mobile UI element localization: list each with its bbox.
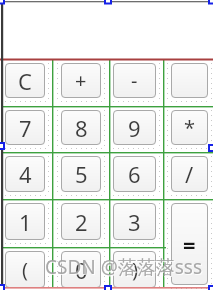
button[interactable] (171, 63, 208, 98)
staticText: + (75, 67, 87, 94)
staticText: ( (22, 256, 28, 283)
button[interactable]: = (171, 203, 208, 285)
button[interactable]: / (171, 156, 208, 192)
button[interactable]: + (61, 63, 101, 98)
button[interactable]: 4 (5, 156, 45, 192)
button[interactable]: 8 (61, 110, 101, 145)
button[interactable]: C (5, 63, 45, 98)
staticText: 3 (128, 207, 141, 237)
staticText: CSDN @落落落sss (46, 255, 204, 281)
staticText: 0 (75, 255, 88, 285)
staticText: CSDN @落落落sss (45, 254, 203, 280)
button[interactable]: ( (5, 251, 45, 288)
staticText: C (18, 66, 32, 96)
button[interactable]: 6 (113, 156, 156, 192)
staticText: 1 (19, 207, 32, 237)
button[interactable]: 3 (113, 203, 156, 240)
button[interactable]: 7 (5, 110, 45, 145)
button[interactable]: * (171, 110, 208, 145)
staticText: 4 (19, 159, 32, 189)
staticText: 5 (75, 159, 88, 189)
staticText: / (185, 159, 194, 189)
staticText: 2 (75, 207, 88, 237)
button[interactable]: 2 (61, 203, 101, 240)
button[interactable]: 1 (5, 203, 45, 240)
button[interactable]: 0 (61, 251, 101, 288)
staticText: 7 (19, 113, 32, 143)
staticText: - (131, 67, 138, 94)
button[interactable]: - (113, 63, 156, 98)
button[interactable]: ) (113, 251, 156, 288)
staticText: 9 (128, 113, 141, 143)
button[interactable]: 5 (61, 156, 101, 192)
staticText: 8 (75, 113, 88, 143)
staticText: * (184, 114, 196, 141)
staticText: 6 (128, 159, 141, 189)
staticText: ) (132, 256, 138, 283)
staticText: = (183, 229, 196, 259)
button[interactable]: 9 (113, 110, 156, 145)
